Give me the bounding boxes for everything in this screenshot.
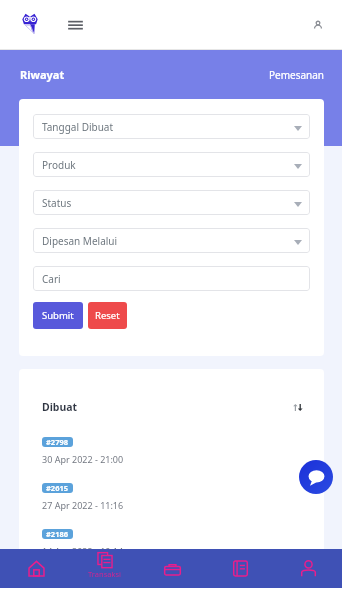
button[interactable]: #2798 — [42, 437, 301, 465]
staticText: #2798 — [46, 437, 69, 447]
staticText: Dibuat — [42, 400, 78, 414]
button[interactable]: Menu — [62, 12, 88, 38]
button[interactable]: Orders — [138, 549, 206, 588]
staticText: Riwayat — [20, 67, 65, 82]
staticText: Submit — [42, 309, 74, 322]
staticText: 30 Apr 2022 - 21:00 — [42, 453, 124, 465]
button[interactable]: Cari — [33, 266, 310, 291]
staticText: 14 Apr 2022 - 10:14 — [42, 545, 124, 557]
staticText: Status — [42, 196, 72, 210]
button[interactable]: Produk — [33, 152, 310, 177]
button[interactable]: Chat — [299, 460, 333, 494]
button[interactable]: Transaksi — [70, 549, 138, 588]
staticText: Cari — [42, 272, 61, 286]
button[interactable]: Status — [33, 190, 310, 215]
button[interactable]: Submit — [33, 302, 83, 329]
button[interactable]: Dipesan Melalui — [33, 228, 310, 253]
staticText: 27 Apr 2022 - 11:16 — [42, 499, 124, 511]
button[interactable]: Sort — [290, 399, 306, 415]
staticText: Pemesanan — [269, 68, 325, 82]
button[interactable]: Reset — [88, 302, 127, 329]
button[interactable]: Catalog — [206, 549, 274, 588]
staticText: Reset — [95, 309, 120, 322]
staticText: Transaksi — [88, 569, 121, 579]
staticText: Tanggal Dibuat — [42, 120, 114, 134]
staticText: #2615 — [46, 483, 69, 493]
staticText: Dipesan Melalui — [42, 234, 118, 248]
button[interactable]: #2615 — [42, 483, 301, 511]
staticText: #2186 — [46, 529, 69, 539]
button[interactable]: Home — [2, 549, 70, 588]
button[interactable]: Account — [308, 15, 328, 35]
staticText: Produk — [42, 158, 76, 172]
button[interactable]: #2186 — [42, 529, 301, 557]
button[interactable]: Tanggal Dibuat — [33, 114, 310, 139]
button[interactable]: Profile — [274, 549, 342, 588]
